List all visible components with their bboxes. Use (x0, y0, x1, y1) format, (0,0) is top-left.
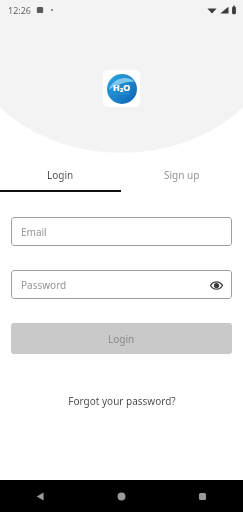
button[interactable]: Password (11, 270, 232, 299)
staticText: Email (21, 225, 47, 239)
staticText: Password (21, 278, 67, 292)
button[interactable]: Show password (207, 276, 225, 294)
staticText: Login (108, 332, 135, 346)
button[interactable]: Recent apps (162, 480, 243, 512)
button[interactable]: Forgot your password? (64, 390, 180, 412)
button[interactable]: Login (11, 323, 232, 354)
button[interactable]: Email (11, 217, 232, 246)
button[interactable]: Sign up (121, 160, 243, 190)
staticText: Forgot your password? (68, 394, 176, 408)
staticText: Sign up (164, 168, 200, 182)
staticText: 12:26 (8, 4, 32, 16)
staticText: H₂O (113, 81, 131, 93)
button[interactable]: Login (0, 160, 121, 190)
staticText: Login (47, 168, 74, 182)
button[interactable]: Back (0, 480, 81, 512)
button[interactable]: Home (81, 480, 162, 512)
